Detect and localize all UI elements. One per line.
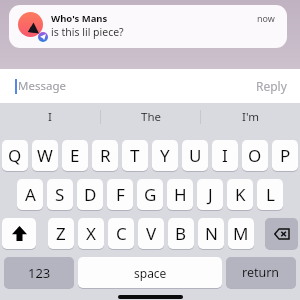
- button[interactable]: E: [62, 140, 88, 172]
- button[interactable]: Who's Mans: [9, 5, 287, 48]
- staticText: W: [37, 144, 53, 167]
- button[interactable]: 123: [4, 257, 74, 289]
- staticText: M: [233, 222, 249, 245]
- button[interactable]: O: [242, 140, 268, 172]
- button[interactable]: Reply: [256, 78, 287, 94]
- staticText: Z: [56, 222, 66, 245]
- staticText: return: [242, 264, 280, 281]
- staticText: E: [70, 144, 80, 167]
- staticText: J: [208, 183, 213, 206]
- button[interactable]: G: [137, 179, 163, 211]
- button[interactable]: L: [257, 179, 283, 211]
- staticText: N: [205, 222, 218, 245]
- button[interactable]: K: [227, 179, 253, 211]
- button[interactable]: V: [138, 218, 164, 250]
- button[interactable]: M: [228, 218, 254, 250]
- staticText: Who's Mans: [51, 12, 108, 25]
- staticText: The: [141, 109, 161, 125]
- button[interactable]: R: [92, 140, 118, 172]
- button[interactable]: space: [78, 257, 222, 289]
- button[interactable]: I: [212, 140, 238, 172]
- staticText: L: [266, 183, 275, 206]
- staticText: Message: [18, 78, 66, 94]
- button[interactable]: I: [0, 103, 100, 130]
- button[interactable]: S: [47, 179, 73, 211]
- button[interactable]: N: [198, 218, 224, 250]
- button[interactable]: D: [77, 179, 103, 211]
- button[interactable]: B: [168, 218, 194, 250]
- staticText: 123: [28, 264, 51, 282]
- button[interactable]: Shift: [2, 218, 36, 250]
- staticText: U: [189, 144, 202, 167]
- staticText: Reply: [256, 78, 287, 94]
- staticText: K: [235, 183, 246, 206]
- button[interactable]: H: [167, 179, 193, 211]
- button[interactable]: P: [272, 140, 298, 172]
- button[interactable]: Z: [48, 218, 74, 250]
- button[interactable]: I'm: [201, 103, 300, 130]
- staticText: is this lil piece?: [51, 25, 124, 39]
- staticText: I: [48, 109, 52, 125]
- staticText: B: [175, 222, 187, 245]
- staticText: C: [116, 222, 127, 245]
- staticText: S: [55, 183, 65, 206]
- button[interactable]: Message: [15, 73, 248, 99]
- staticText: D: [84, 183, 97, 206]
- staticText: now: [257, 12, 275, 24]
- staticText: F: [116, 183, 125, 206]
- button[interactable]: F: [107, 179, 133, 211]
- staticText: O: [248, 144, 262, 167]
- button[interactable]: U: [182, 140, 208, 172]
- staticText: X: [86, 222, 96, 245]
- staticText: Q: [8, 144, 22, 167]
- button[interactable]: Q: [2, 140, 28, 172]
- staticText: H: [174, 183, 187, 206]
- staticText: G: [144, 183, 157, 206]
- button[interactable]: C: [108, 218, 134, 250]
- button[interactable]: The: [101, 103, 200, 130]
- staticText: P: [280, 144, 291, 167]
- button[interactable]: W: [32, 140, 58, 172]
- button[interactable]: A: [17, 179, 43, 211]
- button[interactable]: J: [197, 179, 223, 211]
- button[interactable]: X: [78, 218, 104, 250]
- button[interactable]: Backspace: [265, 218, 298, 250]
- button[interactable]: Y: [152, 140, 178, 172]
- staticText: V: [146, 222, 157, 245]
- staticText: T: [130, 144, 140, 167]
- staticText: space: [134, 265, 167, 281]
- staticText: Y: [160, 144, 170, 167]
- staticText: I: [222, 144, 228, 167]
- staticText: A: [25, 183, 36, 206]
- staticText: R: [100, 144, 111, 167]
- staticText: I'm: [242, 109, 259, 125]
- button[interactable]: return: [226, 257, 296, 289]
- button[interactable]: T: [122, 140, 148, 172]
